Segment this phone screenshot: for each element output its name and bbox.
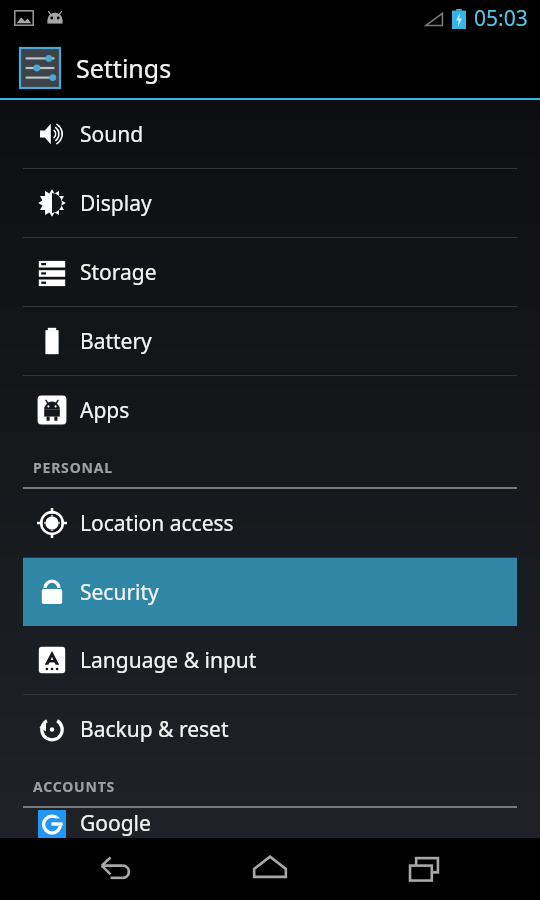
staticText: Google xyxy=(80,809,151,838)
staticText: PERSONAL xyxy=(33,458,113,477)
staticText: Apps xyxy=(80,396,130,425)
button[interactable]: Back xyxy=(77,838,155,900)
button[interactable]: Sound xyxy=(23,100,517,168)
staticText: Display xyxy=(80,189,152,218)
staticText: Storage xyxy=(80,258,157,287)
button[interactable]: Storage xyxy=(23,238,517,306)
staticText: Security xyxy=(80,578,159,607)
staticText: Location access xyxy=(80,509,234,538)
button[interactable]: Settings app icon xyxy=(18,46,62,90)
button[interactable]: Recent apps xyxy=(386,838,464,900)
button[interactable]: Battery xyxy=(23,307,517,375)
staticText: ACCOUNTS xyxy=(33,777,116,796)
button[interactable]: Apps xyxy=(23,376,517,444)
staticText: Settings xyxy=(76,51,172,85)
staticText: Backup & reset xyxy=(80,715,229,744)
button[interactable]: Home xyxy=(231,838,309,900)
button[interactable]: Location access xyxy=(23,489,517,557)
button[interactable]: Google xyxy=(23,808,517,838)
button[interactable]: Backup & reset xyxy=(23,695,517,763)
staticText: 05:03 xyxy=(474,4,528,33)
button[interactable]: Security xyxy=(23,558,517,626)
staticText: Language & input xyxy=(80,646,257,675)
staticText: Battery xyxy=(80,327,152,356)
button[interactable]: Language & input xyxy=(23,626,517,694)
staticText: Sound xyxy=(80,120,144,149)
button[interactable]: Display xyxy=(23,169,517,237)
